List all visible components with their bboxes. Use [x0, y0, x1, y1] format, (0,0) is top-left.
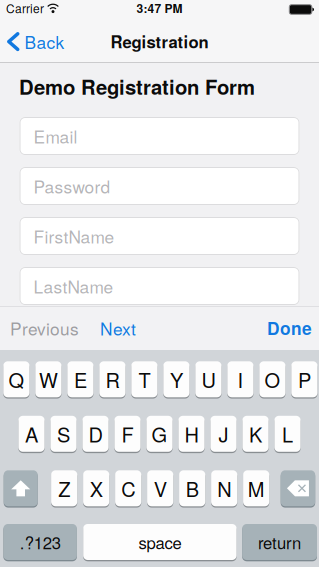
staticText: P [298, 365, 311, 394]
staticText: X [90, 474, 103, 503]
staticText: V [154, 474, 167, 503]
button[interactable]: C [115, 469, 141, 507]
button[interactable]: S [50, 415, 77, 453]
button[interactable]: return [242, 523, 317, 561]
staticText: W [39, 365, 58, 394]
button[interactable]: space [83, 523, 237, 561]
button[interactable]: O [259, 360, 285, 398]
button[interactable]: F [114, 415, 141, 453]
button[interactable]: Delete [281, 469, 315, 507]
button[interactable]: T [131, 360, 157, 398]
staticText: D [88, 419, 102, 448]
staticText: Z [58, 474, 70, 503]
staticText: R [105, 365, 119, 394]
staticText: N [217, 474, 231, 503]
button[interactable]: Back [0, 22, 74, 61]
button[interactable]: Shift [4, 469, 38, 507]
button[interactable]: W [35, 360, 61, 398]
button[interactable]: Y [163, 360, 189, 398]
button[interactable]: Z [51, 469, 77, 507]
button[interactable]: A [18, 415, 45, 453]
staticText: T [138, 365, 150, 394]
button[interactable]: U [195, 360, 221, 398]
button[interactable]: Previous [0, 304, 89, 352]
staticText: U [201, 365, 215, 394]
staticText: Registration [110, 30, 208, 53]
staticText: F [121, 419, 133, 448]
staticText: G [151, 419, 167, 448]
staticText: Previous [10, 316, 79, 340]
staticText: E [74, 365, 87, 394]
button[interactable]: B [179, 469, 205, 507]
staticText: return [258, 530, 301, 554]
button[interactable]: L [274, 415, 301, 453]
staticText: .?123 [20, 530, 61, 554]
button[interactable]: M [243, 469, 269, 507]
staticText: LastName [33, 274, 113, 298]
staticText: M [248, 474, 265, 503]
button[interactable]: Password [19, 167, 299, 205]
staticText: Password [33, 174, 110, 198]
staticText: FirstName [33, 224, 114, 248]
staticText: Email [33, 124, 77, 148]
staticText: L [282, 419, 293, 448]
staticText: J [218, 419, 228, 448]
staticText: K [249, 419, 262, 448]
button[interactable]: E [67, 360, 93, 398]
staticText: C [121, 474, 135, 503]
staticText: A [25, 419, 38, 448]
button[interactable]: FirstName [19, 217, 299, 255]
button[interactable]: J [210, 415, 237, 453]
button[interactable]: I [227, 360, 253, 398]
staticText: Next [100, 316, 136, 340]
button[interactable]: D [82, 415, 109, 453]
button[interactable]: Q [3, 360, 29, 398]
button[interactable]: K [242, 415, 269, 453]
button[interactable]: R [99, 360, 125, 398]
staticText: Back [24, 29, 64, 54]
button[interactable]: Numbers [3, 523, 77, 561]
staticText: H [184, 419, 198, 448]
staticText: Demo Registration Form [19, 72, 255, 101]
button[interactable]: X [83, 469, 109, 507]
staticText: 3:47 PM [136, 0, 182, 17]
button[interactable]: P [291, 360, 317, 398]
button[interactable]: H [178, 415, 205, 453]
staticText: Carrier [6, 0, 44, 17]
staticText: O [264, 365, 280, 394]
button[interactable]: N [211, 469, 237, 507]
button[interactable]: Done [255, 304, 319, 352]
button[interactable]: G [146, 415, 173, 453]
staticText: I [237, 365, 243, 394]
staticText: space [138, 530, 181, 554]
staticText: S [57, 419, 70, 448]
staticText: Done [267, 316, 312, 340]
staticText: Q [8, 365, 24, 394]
staticText: Y [170, 365, 183, 394]
button[interactable]: Email [19, 117, 299, 155]
staticText: B [186, 474, 199, 503]
button[interactable]: Next [89, 304, 142, 352]
button[interactable]: LastName [19, 267, 299, 305]
button[interactable]: V [147, 469, 173, 507]
